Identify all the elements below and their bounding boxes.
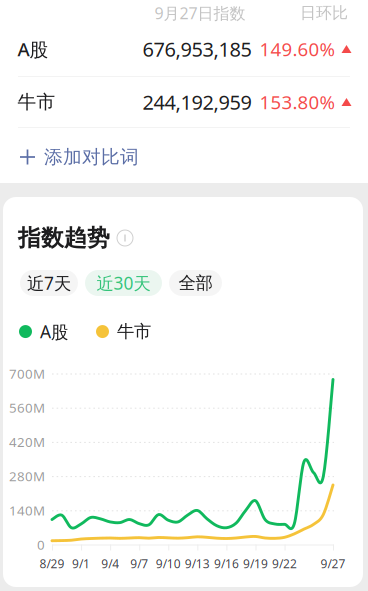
staticText: 560M (9, 399, 45, 416)
staticText: 牛市 (117, 321, 151, 342)
staticText: 9/10 (156, 555, 181, 571)
staticText: 676,953,185 (142, 36, 251, 62)
staticText: A股 (17, 37, 48, 61)
staticText: 9/7 (130, 555, 148, 571)
staticText: 153.80% (259, 90, 335, 114)
staticText: 9/13 (185, 555, 210, 571)
staticText: 9/19 (243, 555, 268, 571)
staticText: 420M (9, 433, 45, 451)
staticText: 280M (9, 467, 45, 485)
staticText: 700M (9, 365, 45, 382)
staticText: 9/22 (272, 555, 297, 571)
button[interactable]: 近30天 (85, 270, 162, 296)
staticText: 添加对比词 (44, 145, 139, 168)
staticText: 近7天 (27, 271, 71, 294)
staticText: 9/16 (214, 555, 239, 571)
button[interactable]: 近7天 (20, 270, 78, 296)
staticText: 149.60% (259, 37, 335, 61)
staticText: 牛市 (17, 90, 55, 113)
button[interactable]: 添加对比词 (0, 136, 368, 178)
staticText: 140M (9, 501, 45, 519)
staticText: 全部 (178, 272, 212, 294)
staticText: 8/29 (39, 555, 64, 571)
button[interactable]: 全部 (169, 270, 222, 296)
staticText: 9/27 (320, 555, 345, 571)
staticText: 指数趋势 (18, 224, 110, 252)
staticText: 近30天 (96, 271, 150, 294)
staticText: 9/1 (72, 555, 90, 571)
staticText: 日环比 (300, 3, 348, 23)
staticText: 9/4 (101, 555, 119, 571)
staticText: A股 (40, 320, 68, 343)
staticText: 244,192,959 (142, 89, 251, 115)
staticText: 9月27日指数 (154, 2, 245, 24)
staticText: 0 (37, 536, 45, 553)
